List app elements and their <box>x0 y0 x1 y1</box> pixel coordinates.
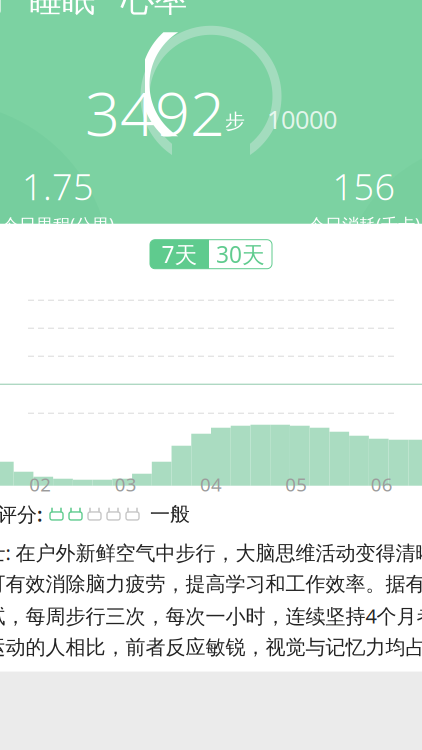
button[interactable]: 运动 <box>0 0 3 26</box>
staticText: 3492 <box>85 71 225 153</box>
button[interactable]: 心率 <box>121 0 187 26</box>
staticText: 1.75 <box>22 162 94 210</box>
staticText: 心率 <box>121 0 187 20</box>
staticText: 7天 <box>161 239 197 269</box>
staticText: 运动 <box>0 0 3 20</box>
staticText: 03 <box>115 472 137 497</box>
staticText: 04 <box>200 472 222 497</box>
staticText: 02 <box>29 472 51 497</box>
staticText: 小贴士: 在户外新鲜空气中步行，大脑思维活动变得清晰、灵 <box>0 539 422 566</box>
staticText: 步 <box>225 109 245 134</box>
staticText: 家测试，每周步行三次，每次一小时，连续坚持4个月者与不 <box>0 602 422 629</box>
staticText: 一般 <box>150 502 190 526</box>
button[interactable]: 30天 <box>209 240 272 269</box>
staticText: 05 <box>285 472 307 497</box>
staticText: 活，可有效消除脑力疲劳，提高学习和工作效率。据有关专 <box>0 572 422 596</box>
staticText: 今日运动评分: <box>0 501 43 527</box>
staticText: 10000 <box>267 102 337 136</box>
staticText: 30天 <box>216 239 265 269</box>
staticText: 156 <box>332 162 395 210</box>
staticText: 睡眠 <box>29 0 95 20</box>
staticText: 喜欢运动的人相比，前者反应敏锐，视觉与记忆力均占优势 <box>0 635 422 660</box>
staticText: 今日里程(公里) <box>2 213 114 236</box>
button[interactable]: 睡眠 <box>29 0 95 26</box>
staticText: 今日消耗(千卡) <box>308 213 420 236</box>
staticText: 06 <box>371 472 393 497</box>
button[interactable]: 7天 <box>150 240 209 269</box>
